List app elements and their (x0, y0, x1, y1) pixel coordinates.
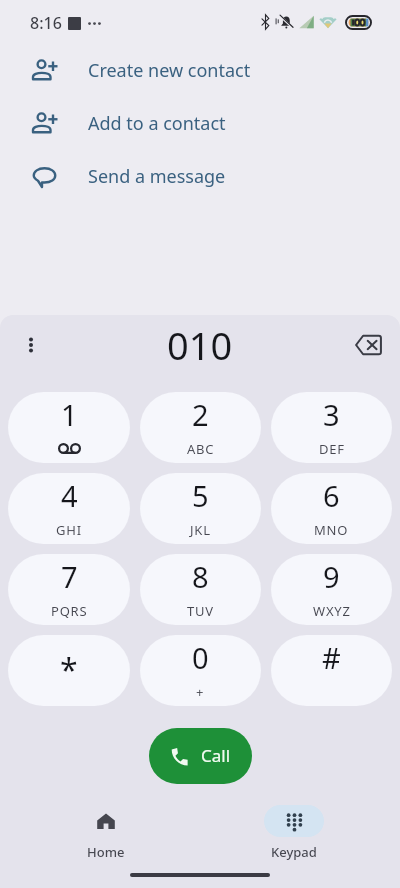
staticText: 0 (192, 638, 209, 677)
staticText: 6 (323, 476, 340, 515)
staticText: PQRS (51, 602, 88, 620)
button[interactable]: More options (11, 325, 51, 365)
staticText: Keypad (271, 843, 317, 861)
button[interactable]: # (271, 635, 392, 706)
staticText: 3 (323, 395, 340, 434)
staticText: Create new contact (88, 58, 251, 83)
staticText: 8:16 (30, 12, 62, 34)
staticText: 4 (61, 476, 78, 515)
staticText: JKL (190, 521, 211, 539)
staticText: 8 (192, 557, 209, 596)
staticText: # (322, 638, 341, 677)
button[interactable]: * (8, 635, 130, 706)
staticText: * (60, 648, 78, 692)
button[interactable]: 9 (271, 554, 392, 625)
staticText: Add to a contact (88, 111, 226, 136)
staticText: Home (87, 843, 125, 861)
staticText: Call (201, 744, 231, 767)
button[interactable]: Keypad (264, 805, 324, 861)
button[interactable]: 0 (140, 635, 261, 706)
staticText: ABC (187, 440, 215, 458)
staticText: 2 (192, 395, 209, 434)
staticText: 5 (192, 476, 209, 515)
staticText: TUV (187, 602, 214, 620)
staticText: 7 (61, 557, 78, 596)
staticText: WXYZ (313, 602, 351, 620)
staticText: 010 (167, 319, 233, 371)
button[interactable]: 1 (8, 392, 130, 463)
button[interactable]: 8 (140, 554, 261, 625)
staticText: 9 (323, 557, 340, 596)
button[interactable]: 5 (140, 473, 261, 544)
staticText: Send a message (88, 164, 226, 189)
staticText: DEF (319, 440, 345, 458)
button[interactable]: 7 (8, 554, 130, 625)
button[interactable]: Call (149, 728, 252, 784)
staticText: + (196, 683, 205, 701)
staticText: 1 (61, 395, 78, 434)
button[interactable]: 3 (271, 392, 392, 463)
staticText: GHI (56, 521, 82, 539)
button[interactable]: 6 (271, 473, 392, 544)
button[interactable]: Send a message (0, 150, 400, 203)
button[interactable]: Backspace (346, 323, 390, 367)
button[interactable]: Add to a contact (0, 97, 400, 150)
staticText: MNO (314, 521, 349, 539)
button[interactable]: Create new contact (0, 44, 400, 97)
button[interactable]: 2 (140, 392, 261, 463)
button[interactable]: 4 (8, 473, 130, 544)
button[interactable]: Home (76, 805, 136, 861)
